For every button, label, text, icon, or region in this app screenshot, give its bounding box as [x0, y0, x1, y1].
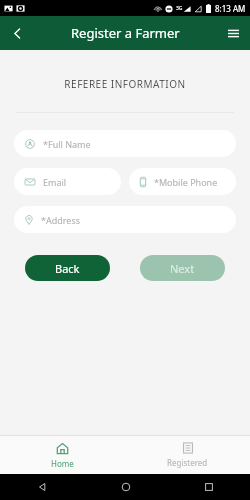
button[interactable]: *Address [14, 206, 236, 233]
staticText: *Full Name [43, 138, 91, 150]
button[interactable]: Recent apps [167, 474, 250, 500]
button[interactable]: Next [140, 255, 225, 281]
button[interactable]: Back [0, 16, 34, 50]
staticText: REFEREE INFORMATION [0, 77, 250, 91]
staticText: 8:13 AM [215, 3, 246, 14]
button[interactable]: *Mobile Phone [129, 168, 236, 195]
button[interactable]: *Full Name [14, 130, 236, 157]
staticText: Email [43, 176, 67, 188]
button[interactable]: Email [14, 168, 121, 195]
staticText: *Mobile Phone [154, 176, 218, 188]
staticText: 3G [176, 5, 183, 12]
staticText: Back [55, 261, 80, 276]
staticText: *Address [41, 214, 81, 226]
staticText: Registered [167, 457, 208, 468]
button[interactable]: Back [0, 474, 84, 500]
button[interactable]: Home [84, 474, 167, 500]
button[interactable]: Menu [216, 16, 250, 50]
staticText: Register a Farmer [71, 24, 180, 42]
button[interactable]: Back [25, 255, 110, 281]
button[interactable]: Home [0, 436, 125, 474]
staticText: Next [170, 261, 195, 276]
staticText: Home [51, 458, 74, 469]
button[interactable]: Registered [125, 436, 250, 474]
